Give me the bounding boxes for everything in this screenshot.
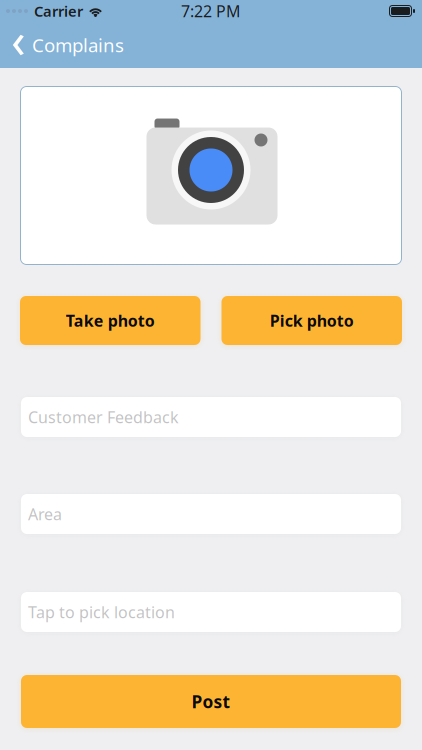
button[interactable]: Tap to pick location xyxy=(21,592,401,632)
staticText: Carrier xyxy=(34,1,83,21)
button[interactable]: Pick photo xyxy=(221,296,402,345)
staticText: Area xyxy=(28,503,62,525)
staticText: Pick photo xyxy=(270,310,354,331)
staticText: 7:22 PM xyxy=(181,0,241,22)
button[interactable]: Post xyxy=(21,675,401,728)
staticText: Complains xyxy=(32,33,124,57)
staticText: Customer Feedback xyxy=(28,406,179,428)
button[interactable]: Take photo xyxy=(20,296,200,345)
button[interactable]: Customer Feedback xyxy=(21,397,401,437)
staticText: Tap to pick location xyxy=(28,601,175,623)
staticText: Post xyxy=(191,690,230,713)
button[interactable]: Complains xyxy=(0,22,134,68)
button[interactable]: Area xyxy=(21,494,401,534)
staticText: Take photo xyxy=(66,310,155,331)
